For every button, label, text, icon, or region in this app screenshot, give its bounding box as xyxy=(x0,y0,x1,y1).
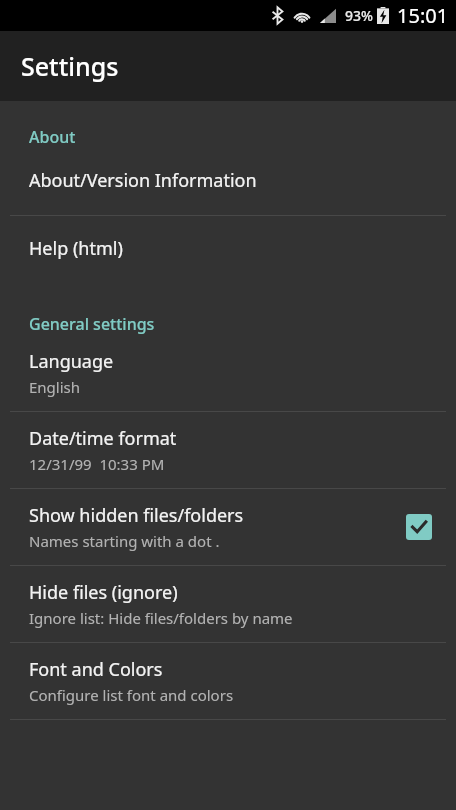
staticText: Help (html) xyxy=(29,236,123,261)
staticText: Show hidden files/folders xyxy=(29,503,244,528)
staticText: 12/31/99 10:33 PM xyxy=(29,454,165,474)
staticText: Font and Colors xyxy=(29,657,163,682)
staticText: Configure list font and colors xyxy=(29,685,234,705)
button[interactable]: Date/time format xyxy=(0,412,456,488)
staticText: About xyxy=(29,126,76,148)
staticText: 15:01 xyxy=(397,2,449,29)
staticText: Date/time format xyxy=(29,426,177,451)
staticText: General settings xyxy=(29,313,155,335)
staticText: 93% xyxy=(345,6,373,25)
staticText: Hide files (ignore) xyxy=(29,580,178,605)
staticText: English xyxy=(29,377,81,397)
button[interactable]: Language xyxy=(0,335,456,411)
staticText: Settings xyxy=(21,49,119,83)
button[interactable]: Help (html) xyxy=(0,216,456,283)
button[interactable]: Show hidden files/folders xyxy=(0,489,456,565)
button[interactable]: Show hidden files checkbox xyxy=(406,514,432,540)
button[interactable]: Font and Colors xyxy=(0,643,456,719)
button[interactable]: About/Version Information xyxy=(0,148,456,215)
staticText: Language xyxy=(29,349,114,374)
button[interactable]: Hide files (ignore) xyxy=(0,566,456,642)
staticText: About/Version Information xyxy=(29,168,257,193)
staticText: Ignore list: Hide files/folders by name xyxy=(29,608,293,628)
staticText: Names starting with a dot . xyxy=(29,531,220,551)
